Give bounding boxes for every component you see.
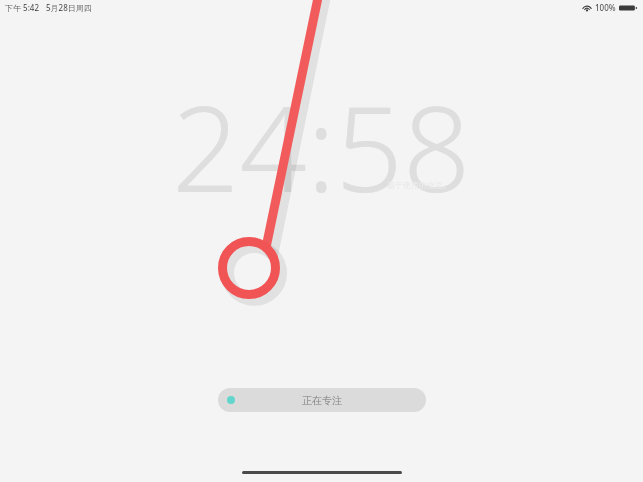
staticText: 24:58 [172,66,471,227]
staticText: 100% [595,2,616,13]
other: Battery full [619,4,637,12]
staticText: 正在专注 [302,394,342,407]
other: Wi-Fi [582,4,592,12]
staticText: 基于使用的交互。 [387,180,451,190]
button[interactable]: 正在专注 [218,388,426,412]
staticText: 5月28日周四 [46,2,92,13]
staticText: 下午 5:42 [5,2,39,13]
